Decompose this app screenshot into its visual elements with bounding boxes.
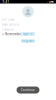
- staticText: Email address: [2, 23, 19, 26]
- staticText: 9:41: [2, 0, 9, 3]
- staticText: Full name: [2, 18, 15, 21]
- staticText: ᎕: [47, 0, 49, 3]
- staticText: Remember me: [5, 32, 28, 36]
- staticText: Password: [2, 28, 14, 31]
- staticText: Continue: [21, 88, 35, 92]
- button[interactable]: Sign in: [21, 32, 35, 36]
- button[interactable]: Register: [21, 39, 35, 43]
- staticText: ◗: [49, 0, 50, 3]
- button[interactable]: Continue: [16, 86, 39, 93]
- staticText: Register: [22, 39, 34, 43]
- staticText: Sign in: [23, 32, 33, 36]
